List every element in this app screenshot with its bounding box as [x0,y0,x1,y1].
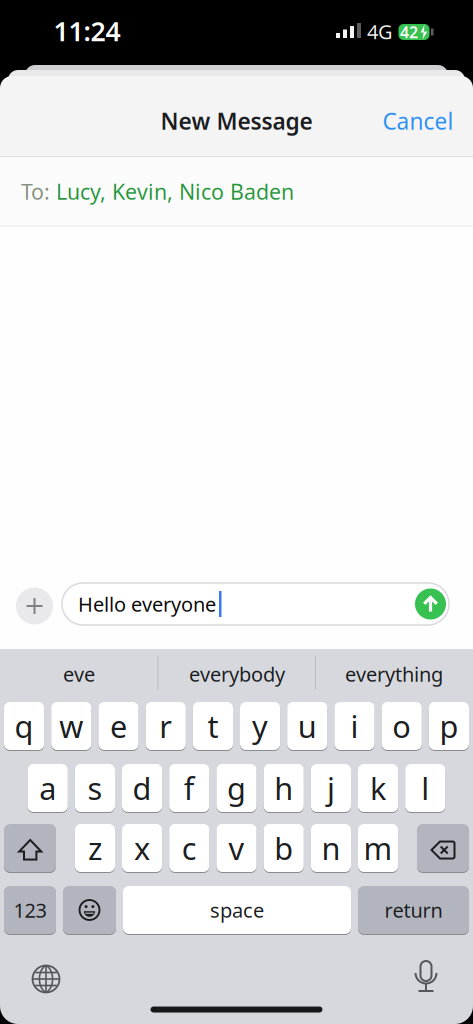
staticText: g [227,768,246,808]
button[interactable]: m [358,823,398,872]
button[interactable]: eve [4,651,154,697]
button[interactable]: b [264,823,304,872]
staticText: a [39,768,56,808]
button[interactable]: d [122,763,162,812]
staticText: 11:24 [53,13,120,49]
button[interactable]: Hello everyone [62,583,449,625]
button[interactable]: To: [0,157,473,225]
staticText: return [384,897,442,923]
staticText: p [439,706,458,746]
button[interactable] [63,885,116,934]
button[interactable]: y [240,701,280,750]
staticText: n [321,828,340,868]
button[interactable] [31,964,60,993]
button[interactable]: e [98,701,139,750]
button[interactable] [408,960,444,994]
button[interactable]: Cancel [378,101,458,141]
staticText: everything [345,661,443,687]
staticText: x [134,828,150,868]
button[interactable]: u [287,701,327,750]
button[interactable]: n [311,823,351,872]
button[interactable]: t [193,701,233,750]
staticText: s [87,768,102,808]
staticText: Cancel [382,106,453,136]
staticText: e [110,706,127,746]
staticText: o [392,706,411,746]
button[interactable]: z [75,823,115,872]
staticText: c [182,828,197,868]
button[interactable]: v [216,823,257,872]
button[interactable]: i [334,701,375,750]
staticText: 42 [400,21,418,43]
staticText: l [421,768,429,808]
staticText: k [370,768,386,808]
staticText: i [350,706,358,746]
button[interactable]: q [4,701,44,750]
button[interactable] [415,588,446,619]
staticText: j [327,768,335,808]
button[interactable]: x [122,823,162,872]
button[interactable]: everything [319,651,469,697]
staticText: space [210,897,264,923]
button[interactable]: w [51,701,91,750]
staticText: q [15,706,34,746]
staticText: To: [21,177,50,206]
staticText: eve [63,661,95,687]
staticText: u [298,706,317,746]
button[interactable]: o [382,701,422,750]
staticText: Lucy, Kevin, Nico Baden [56,177,294,206]
staticText: Hello everyone [78,591,216,617]
staticText: w [59,706,83,746]
button[interactable]: f [169,763,209,812]
staticText: z [88,828,102,868]
button[interactable]: everybody [162,651,312,697]
button[interactable]: c [169,823,209,872]
staticText: New Message [160,106,312,136]
button[interactable]: g [216,763,257,812]
staticText: y [252,706,268,746]
staticText: t [207,706,218,746]
button[interactable] [16,587,53,624]
button[interactable]: space [123,885,351,934]
button[interactable]: 123 [4,885,56,934]
button[interactable] [4,823,56,872]
button[interactable]: s [75,763,115,812]
button[interactable]: l [405,763,445,812]
staticText: m [364,828,393,868]
staticText: r [159,706,172,746]
button[interactable] [417,823,469,872]
staticText: everybody [189,661,285,687]
button[interactable]: k [358,763,398,812]
staticText: v [228,828,244,868]
button[interactable]: r [146,701,186,750]
button[interactable]: p [429,701,469,750]
staticText: 123 [13,897,46,923]
button[interactable]: a [28,763,68,812]
button[interactable]: return [358,885,469,934]
staticText: d [133,768,152,808]
staticText: b [274,828,293,868]
staticText: 4G [367,18,393,45]
button[interactable]: h [264,763,304,812]
staticText: f [184,768,195,808]
staticText: h [274,768,293,808]
button[interactable]: j [311,763,351,812]
